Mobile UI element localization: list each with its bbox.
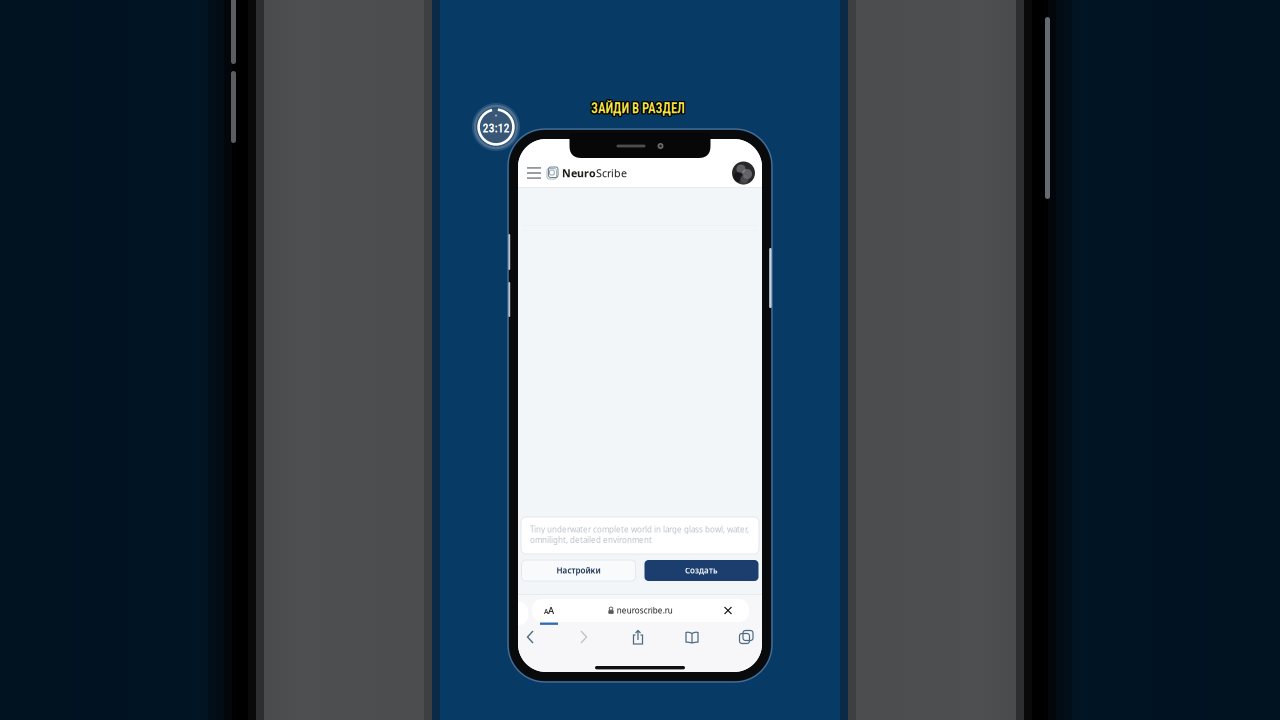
button[interactable]: Tabs: [733, 626, 759, 648]
button[interactable]: Account: [732, 161, 755, 184]
staticText: ЗАЙДИ В РАЗДЕЛ: [542, 95, 730, 125]
staticText: Tiny underwater complete world in large …: [530, 524, 749, 545]
staticText: NeuroScribe: [562, 166, 627, 180]
staticText: Настройки: [556, 565, 600, 576]
staticText: ЗАЙДИ В РАЗДЕЛ: [546, 91, 734, 121]
staticText: ЗАЙДИ В РАЗДЕЛ: [542, 91, 730, 121]
button[interactable]: AA: [532, 599, 749, 625]
staticText: AA: [544, 604, 554, 617]
button[interactable]: Настройки: [521, 560, 635, 581]
button[interactable]: Создать: [644, 560, 758, 581]
button[interactable]: Forward: [571, 626, 597, 648]
staticText: neuroscribe.ru: [617, 605, 673, 616]
button[interactable]: Share: [625, 626, 651, 648]
staticText: 23:12: [482, 121, 509, 136]
button[interactable]: NeuroScribe: [544, 159, 630, 187]
staticText: ЗАЙДИ В РАЗДЕЛ: [544, 95, 732, 125]
button[interactable]: Bookmarks: [679, 626, 705, 648]
button[interactable]: Back: [517, 626, 543, 648]
staticText: ЗАЙДИ В РАЗДЕЛ: [547, 93, 735, 123]
staticText: Создать: [685, 565, 718, 576]
staticText: ЗАЙДИ В РАЗДЕЛ: [544, 91, 732, 121]
staticText: ЗАЙДИ В РАЗДЕЛ: [544, 93, 732, 123]
staticText: ЗАЙДИ В РАЗДЕЛ: [541, 93, 729, 123]
staticText: ЗАЙДИ В РАЗДЕЛ: [546, 95, 734, 125]
button[interactable]: Menu: [524, 159, 544, 187]
